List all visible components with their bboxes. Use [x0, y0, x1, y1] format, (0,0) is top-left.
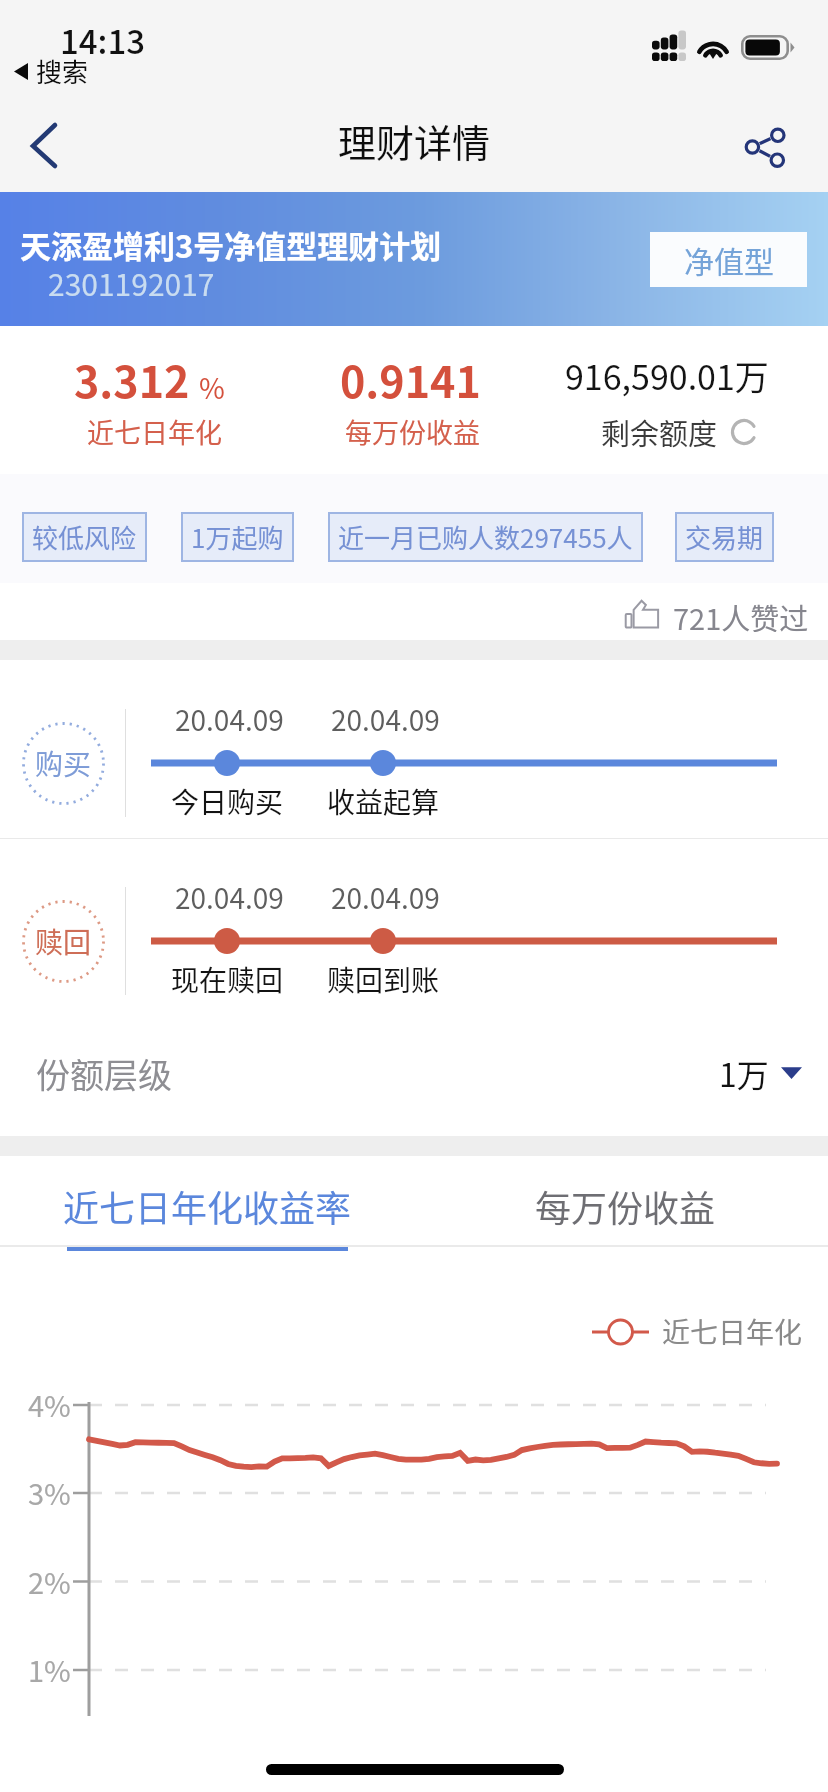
button[interactable]: Back — [0, 96, 110, 192]
staticText: 0.9141 — [340, 348, 481, 410]
staticText: 近七日年化 — [87, 412, 222, 451]
button[interactable]: 每万份收益 — [414, 1156, 828, 1264]
staticText: 每万份收益 — [535, 1180, 716, 1232]
staticText: 每万份收益 — [345, 412, 480, 451]
staticText: 14:13 — [60, 16, 146, 64]
staticText: 1万起购 — [191, 518, 284, 556]
staticText: 剩余额度 — [601, 411, 718, 453]
button[interactable]: 较低风险 — [22, 512, 147, 562]
staticText: 收益起算 — [327, 781, 440, 822]
staticText: 721人赞过 — [673, 596, 809, 632]
staticText: 份额层级 — [36, 1049, 172, 1098]
staticText: 净值型 — [684, 238, 774, 281]
staticText: 1万 — [719, 1050, 769, 1096]
staticText: 赎回到账 — [327, 959, 440, 1000]
button[interactable]: 赎回 — [22, 900, 105, 983]
staticText: 2% — [28, 1560, 71, 1602]
staticText: 交易期 — [685, 518, 764, 556]
staticText: % — [199, 367, 225, 408]
staticText: 20.04.09 — [331, 877, 440, 918]
staticText: 3.312 — [74, 348, 190, 410]
staticText: 理财详情 — [338, 113, 491, 168]
button[interactable]: Share — [718, 96, 828, 192]
staticText: 近七日年化 — [662, 1311, 803, 1352]
button[interactable]: 1万起购 — [181, 512, 294, 562]
staticText: 20.04.09 — [175, 877, 284, 918]
staticText: 近一月已购人数297455人 — [338, 518, 633, 556]
staticText: 916,590.01万 — [565, 351, 769, 400]
staticText: 天添盈增利3号净值型理财计划 — [20, 222, 442, 267]
staticText: 20.04.09 — [175, 699, 284, 740]
button[interactable]: 721人赞过 — [625, 596, 809, 632]
staticText: 20.04.09 — [331, 699, 440, 740]
button[interactable]: 购买 — [22, 722, 105, 805]
staticText: 2301192017 — [48, 261, 215, 304]
staticText: 1% — [28, 1648, 71, 1690]
staticText: 4% — [28, 1383, 71, 1425]
staticText: 较低风险 — [32, 518, 137, 556]
staticText: 现在赎回 — [171, 959, 284, 1000]
staticText: 赎回 — [35, 921, 92, 962]
button[interactable]: 近七日年化 — [592, 1311, 803, 1352]
staticText: 搜索 — [36, 52, 89, 90]
button[interactable]: 净值型 — [650, 232, 807, 287]
staticText: 3% — [28, 1471, 71, 1513]
button[interactable]: 份额层级 — [0, 1010, 828, 1136]
staticText: 近七日年化收益率 — [63, 1180, 352, 1232]
button[interactable]: 近一月已购人数297455人 — [328, 512, 643, 562]
staticText: 今日购买 — [171, 781, 284, 822]
button[interactable]: 交易期 — [675, 512, 774, 562]
staticText: 购买 — [35, 743, 92, 784]
button[interactable]: 近七日年化收益率 — [0, 1156, 414, 1264]
